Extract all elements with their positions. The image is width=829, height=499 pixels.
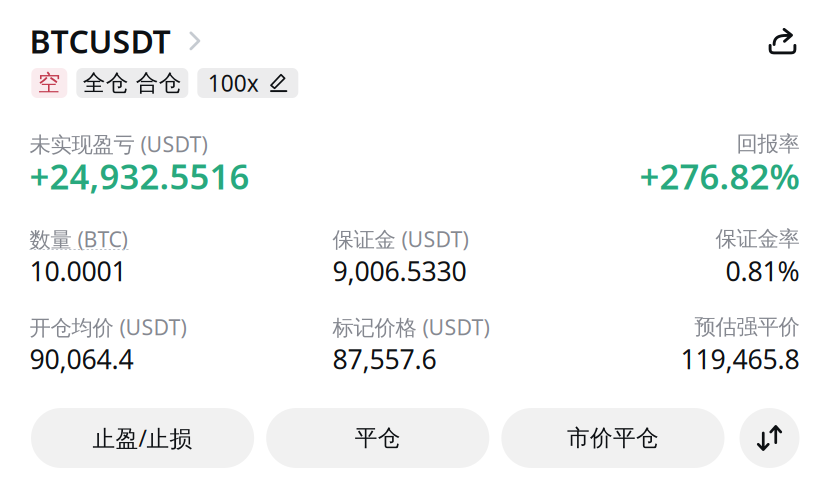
staticText: 保证金率 (715, 226, 799, 252)
staticText: 未实现盈亏 (USDT) (29, 130, 207, 158)
button[interactable]: BTCUSDT (29, 20, 200, 62)
staticText: 0.81% (725, 253, 799, 289)
staticText: 数量 (BTC) (29, 225, 127, 253)
staticText: 9,006.5330 (332, 253, 466, 289)
staticText: 开仓均价 (USDT) (29, 313, 186, 341)
staticText: 90,064.4 (29, 341, 133, 377)
staticText: +24,932.5516 (29, 153, 249, 199)
button[interactable]: 100x (197, 68, 298, 98)
staticText: 回报率 (736, 131, 799, 157)
button[interactable]: 止盈/止损 (31, 408, 254, 468)
staticText: 市价平仓 (567, 424, 659, 452)
button[interactable]: 平仓 (266, 408, 489, 468)
button[interactable]: Share (768, 27, 799, 54)
button[interactable]: 市价平仓 (501, 408, 724, 468)
staticText: BTCUSDT (29, 20, 170, 62)
staticText: 标记价格 (USDT) (332, 313, 489, 341)
staticText: 平仓 (355, 424, 401, 452)
staticText: 保证金 (USDT) (332, 225, 468, 253)
staticText: 预估强平价 (694, 314, 799, 340)
staticText: 87,557.6 (332, 341, 436, 377)
staticText: 止盈/止损 (93, 423, 193, 453)
button[interactable]: Sort orders (739, 408, 799, 468)
staticText: 100x (208, 68, 259, 98)
staticText: 10.0001 (29, 253, 126, 289)
staticText: 空 (38, 69, 61, 97)
staticText: 全仓 合仓 (83, 69, 182, 97)
staticText: 119,465.8 (680, 341, 799, 377)
staticText: +276.82% (639, 153, 799, 199)
